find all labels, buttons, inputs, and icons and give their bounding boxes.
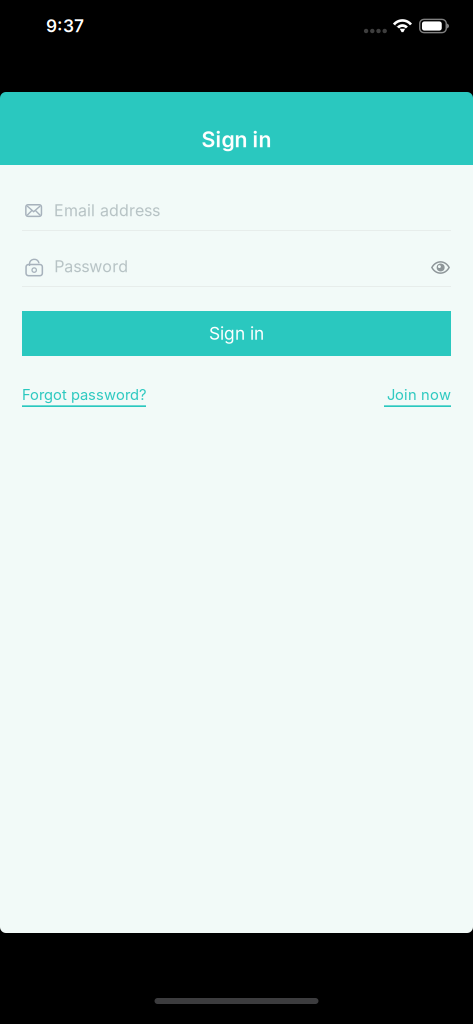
staticText: Sign in (201, 127, 271, 152)
staticText: Email address (54, 201, 160, 220)
button[interactable]: Forgot password? (22, 386, 146, 407)
button[interactable]: Join now (384, 386, 451, 407)
button[interactable]: Sign in (22, 311, 451, 356)
staticText: Join now (387, 386, 451, 403)
staticText: Sign in (209, 323, 264, 344)
staticText: Forgot password? (22, 386, 146, 403)
button[interactable]: Show password (418, 251, 451, 282)
staticText: 9:37 (46, 16, 84, 36)
staticText: Password (54, 257, 128, 276)
